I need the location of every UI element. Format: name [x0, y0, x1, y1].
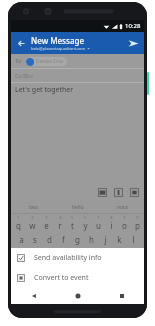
- button[interactable]: Send: [122, 32, 144, 54]
- staticText: hello: [72, 204, 84, 211]
- staticText: h: [89, 234, 94, 245]
- staticText: 6: [84, 215, 87, 220]
- staticText: Convert to event: [34, 273, 89, 283]
- button[interactable]: 2: [25, 214, 39, 231]
- button[interactable]: Home: [56, 288, 100, 304]
- staticText: r: [58, 220, 62, 231]
- staticText: Let's get together: [15, 85, 74, 95]
- button[interactable]: 9: [118, 214, 131, 231]
- button[interactable]: 8: [105, 214, 118, 231]
- staticText: t: [71, 220, 74, 231]
- staticText: 0: [136, 215, 139, 220]
- button[interactable]: f: [56, 231, 70, 248]
- button[interactable]: a: [15, 231, 28, 248]
- button[interactable]: 1: [11, 214, 25, 231]
- button[interactable]: nota: [100, 201, 144, 213]
- button[interactable]: d: [42, 231, 56, 248]
- button[interactable]: 0: [131, 214, 144, 231]
- staticText: 4: [59, 215, 62, 220]
- staticText: nota: [117, 204, 128, 211]
- button[interactable]: j: [98, 231, 112, 248]
- button[interactable]: 7: [92, 214, 105, 231]
- staticText: 1: [17, 215, 20, 220]
- staticText: 2: [31, 215, 34, 220]
- button[interactable]: Insert from Drive: [129, 187, 140, 198]
- button[interactable]: g: [70, 231, 84, 248]
- staticText: Cc/Bcc: [15, 72, 34, 80]
- staticText: 7: [97, 215, 100, 220]
- staticText: p: [135, 220, 140, 231]
- button[interactable]: Insert photo: [97, 187, 108, 198]
- staticText: i: [110, 220, 113, 231]
- staticText: q: [16, 220, 21, 231]
- button[interactable]: two: [11, 201, 56, 213]
- button[interactable]: 6: [79, 214, 92, 231]
- staticText: j: [104, 234, 107, 245]
- staticText: d: [47, 234, 52, 245]
- staticText: u: [96, 220, 101, 231]
- staticText: w: [29, 220, 36, 231]
- button[interactable]: Attach file: [113, 187, 124, 198]
- staticText: two: [29, 204, 38, 211]
- staticText: kate@placentaquadrant.com: [31, 46, 86, 51]
- button[interactable]: To: [11, 54, 144, 68]
- staticText: g: [75, 234, 80, 245]
- button[interactable]: h: [84, 231, 98, 248]
- staticText: New Message: [31, 35, 85, 46]
- staticText: 5: [71, 215, 74, 220]
- button[interactable]: 3: [39, 214, 53, 231]
- button[interactable]: Back: [11, 33, 31, 53]
- staticText: Send availability info: [34, 253, 102, 263]
- staticText: k: [117, 234, 122, 245]
- staticText: Denise Diaz: [36, 58, 64, 65]
- button[interactable]: hello: [56, 201, 100, 213]
- button[interactable]: l: [126, 231, 140, 248]
- staticText: y: [83, 220, 88, 231]
- staticText: f: [62, 234, 65, 245]
- staticText: 10:28: [125, 22, 141, 30]
- button[interactable]: 5: [66, 214, 79, 231]
- button[interactable]: Recent apps: [100, 288, 144, 304]
- button[interactable]: Send availability info: [11, 248, 144, 268]
- button[interactable]: 4: [53, 214, 66, 231]
- staticText: 9: [123, 215, 126, 220]
- button[interactable]: s: [28, 231, 42, 248]
- button[interactable]: Back: [11, 288, 56, 304]
- staticText: To: [15, 57, 22, 65]
- button[interactable]: Let's get together: [11, 83, 144, 97]
- staticText: a: [19, 234, 24, 245]
- staticText: l: [132, 234, 135, 245]
- staticText: 8: [110, 215, 113, 220]
- staticText: e: [44, 220, 49, 231]
- staticText: o: [122, 220, 127, 231]
- staticText: s: [33, 234, 37, 245]
- button[interactable]: Convert to event: [11, 268, 144, 288]
- staticText: 3: [45, 215, 48, 220]
- button[interactable]: k: [112, 231, 126, 248]
